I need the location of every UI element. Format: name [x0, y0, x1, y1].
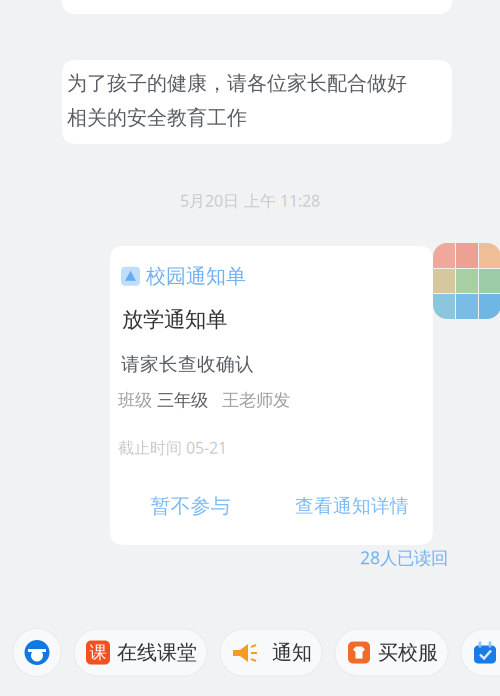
staticText: 查看通知详情	[295, 494, 409, 517]
staticText: 在线课堂	[117, 640, 197, 665]
staticText: 请家长查收确认	[121, 353, 254, 376]
button[interactable]: 请假	[461, 629, 500, 676]
button[interactable]: 查看通知详情	[271, 484, 433, 528]
staticText: 课	[89, 642, 106, 663]
staticText: 28人已读回	[360, 546, 448, 569]
staticText: 相关的安全教育工作	[67, 106, 247, 130]
staticText: 为了孩子的健康，请各位家长配合做好	[67, 71, 407, 96]
button[interactable]: 在线客服	[13, 628, 61, 676]
staticText: 5月20日 上午 11:28	[180, 190, 320, 211]
button[interactable]: 28人已读回	[360, 546, 448, 569]
button[interactable]: 买校服	[335, 629, 448, 676]
staticText: 截止时间 05-21	[118, 437, 227, 458]
button[interactable]: 暂不参与	[110, 484, 271, 528]
staticText: 校园通知单	[146, 264, 246, 289]
staticText: 王老师发	[222, 390, 290, 411]
button[interactable]: 通知	[220, 629, 322, 676]
staticText: 暂不参与	[150, 494, 230, 518]
staticText: 三年级	[157, 390, 208, 411]
staticText: 通知	[272, 640, 312, 665]
staticText: 班级	[118, 390, 152, 411]
staticText: 买校服	[378, 640, 438, 665]
staticText: 放学通知单	[122, 307, 227, 333]
button[interactable]: 课	[74, 629, 207, 676]
